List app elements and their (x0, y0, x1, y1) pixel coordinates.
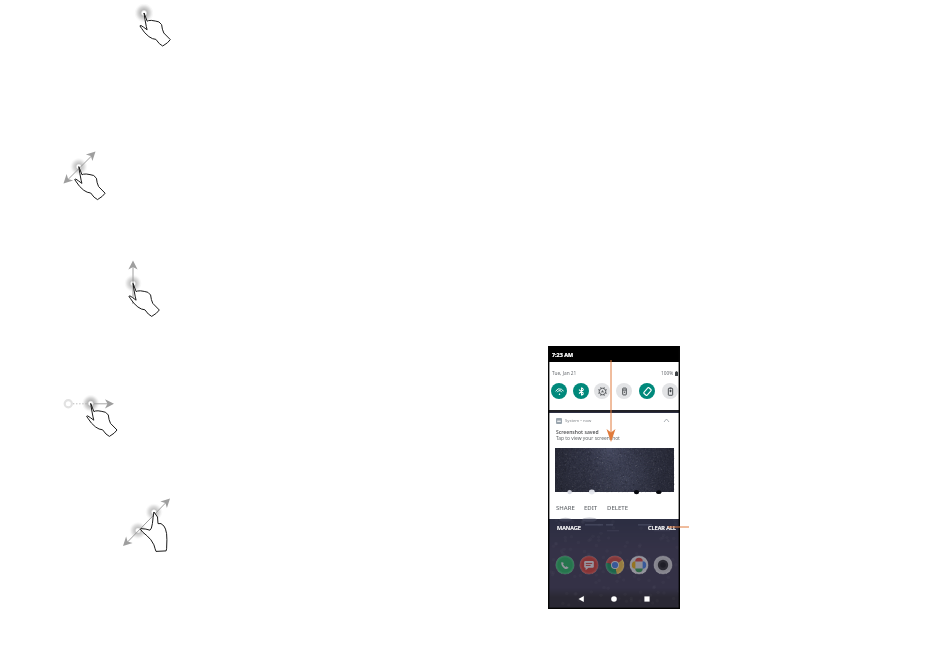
button[interactable]: Photos (629, 555, 649, 575)
staticText: SHARE (556, 504, 575, 512)
button[interactable]: Chrome (605, 555, 625, 575)
button[interactable]: Auto rotate (639, 383, 655, 399)
staticText: 7:23 AM (552, 351, 573, 358)
button[interactable]: Messages (579, 555, 599, 575)
button[interactable]: CLEAR ALL (648, 524, 676, 532)
button[interactable]: EDIT (584, 504, 598, 512)
staticText: EDIT (584, 504, 598, 512)
button[interactable]: Auto brightness (594, 383, 610, 399)
button[interactable]: Screenshot saved (548, 426, 680, 494)
button[interactable]: Wi-Fi (551, 383, 567, 399)
button[interactable]: Back (576, 594, 586, 604)
staticText: DELETE (607, 504, 628, 512)
button[interactable]: Battery saver (662, 383, 678, 399)
button[interactable]: Collapse notification (662, 416, 671, 425)
staticText: System • now (565, 418, 592, 424)
button[interactable]: Recents (642, 594, 652, 604)
staticText: Screenshot saved (556, 429, 599, 436)
button[interactable]: DELETE (607, 504, 628, 512)
button[interactable]: MANAGE (557, 524, 581, 532)
staticText: 100% (661, 370, 674, 377)
staticText: CLEAR ALL (648, 524, 676, 532)
button[interactable]: SHARE (556, 504, 575, 512)
staticText: MANAGE (557, 524, 581, 532)
button[interactable]: Home (609, 594, 619, 604)
staticText: Tap to view your screenshot (556, 435, 620, 442)
button[interactable]: Phone (555, 555, 575, 575)
staticText: Tue, Jan 21 (552, 370, 577, 377)
button[interactable]: Flashlight (616, 383, 632, 399)
button[interactable]: Camera (653, 555, 673, 575)
button[interactable]: Bluetooth (573, 383, 589, 399)
